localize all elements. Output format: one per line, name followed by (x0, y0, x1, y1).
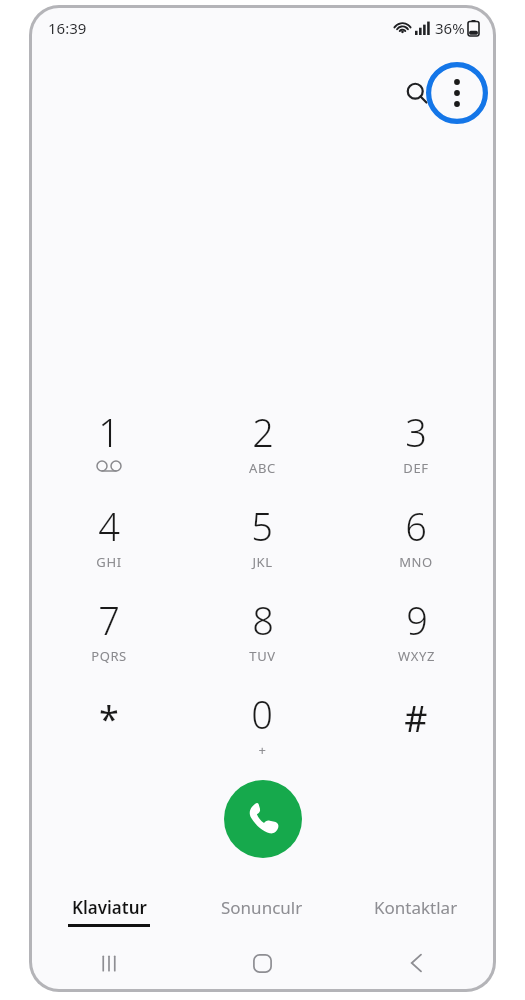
staticText: 4 (98, 500, 120, 552)
staticText: 7 (98, 594, 120, 646)
button[interactable]: * (32, 688, 185, 774)
staticText: * (99, 694, 119, 743)
button[interactable]: 7 (32, 594, 185, 680)
button[interactable]: 1 (32, 406, 185, 492)
staticText: + (258, 741, 267, 759)
staticText: WXYZ (398, 647, 435, 665)
staticText: # (404, 694, 428, 743)
staticText: PQRS (91, 647, 127, 665)
button[interactable]: 2 (185, 406, 339, 492)
staticText: Kontaktlar (374, 896, 458, 919)
button[interactable]: Back (339, 941, 493, 985)
staticText: MNO (399, 553, 433, 571)
staticText: ABC (249, 459, 276, 477)
staticText: 9 (406, 594, 428, 646)
button[interactable]: 4 (32, 500, 185, 586)
button[interactable]: Recent apps (32, 941, 185, 985)
staticText: TUV (249, 647, 276, 665)
button[interactable]: 5 (185, 500, 339, 586)
button[interactable]: 9 (339, 594, 493, 680)
button[interactable]: 3 (339, 406, 493, 492)
staticText: Sonunculr (221, 896, 303, 919)
staticText: 8 (252, 594, 274, 646)
button[interactable]: # (339, 688, 493, 774)
staticText: 5 (251, 500, 273, 552)
button[interactable]: Call (224, 780, 302, 858)
button[interactable]: Search (395, 71, 439, 115)
button[interactable]: 0 (185, 688, 339, 774)
button[interactable]: Klaviatur (32, 896, 185, 942)
staticText: 0 (251, 688, 273, 740)
staticText: 2 (252, 406, 274, 458)
staticText: Klaviatur (72, 896, 147, 919)
staticText: 36% (435, 18, 465, 38)
button[interactable]: Home (185, 941, 339, 985)
button[interactable]: 6 (339, 500, 493, 586)
staticText: GHI (96, 553, 122, 571)
staticText: JKL (252, 553, 273, 571)
button[interactable]: Kontaktlar (339, 896, 493, 942)
button[interactable]: Sonunculr (185, 896, 339, 942)
staticText: 3 (405, 406, 427, 458)
button[interactable]: More options (426, 62, 488, 124)
staticText: 1 (98, 406, 120, 458)
button[interactable]: 8 (185, 594, 339, 680)
staticText: DEF (403, 459, 429, 477)
staticText: 16:39 (48, 18, 87, 38)
staticText: 6 (405, 500, 427, 552)
